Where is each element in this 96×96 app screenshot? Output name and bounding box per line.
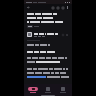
button[interactable]: Back [26, 5, 31, 10]
button[interactable]: Archive [50, 5, 55, 10]
button[interactable]: Mark unread [60, 5, 65, 10]
button[interactable]: Reply [65, 33, 69, 37]
button[interactable]: Meet [55, 87, 70, 93]
button[interactable]: Star [24, 31, 72, 38]
button[interactable]: More options [65, 5, 70, 10]
button[interactable]: Chat [40, 87, 55, 93]
button[interactable]: Star [61, 33, 65, 37]
button[interactable] [27, 25, 33, 28]
button[interactable]: Delete [55, 5, 60, 10]
button[interactable]: Mail [26, 87, 40, 93]
